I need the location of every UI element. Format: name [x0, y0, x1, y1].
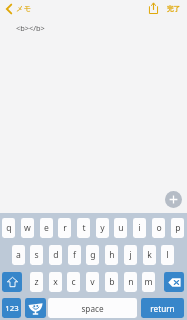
staticText: r [63, 222, 67, 234]
button[interactable]: a [12, 245, 25, 265]
button[interactable]: d [49, 245, 62, 265]
button[interactable]: w [21, 218, 34, 238]
button[interactable]: q [2, 218, 15, 238]
button[interactable]: Share [144, 0, 162, 18]
staticText: m [144, 276, 153, 288]
staticText: g [90, 249, 96, 261]
staticText: k [147, 249, 152, 261]
button[interactable]: v [86, 272, 99, 292]
button[interactable]: c [67, 272, 80, 292]
button[interactable]: return [141, 298, 184, 318]
staticText: f [73, 249, 76, 261]
staticText: s [34, 249, 39, 261]
button[interactable]: r [58, 218, 71, 238]
staticText: a [16, 249, 21, 261]
staticText: e [44, 222, 49, 234]
button[interactable]: Add [165, 191, 182, 208]
button[interactable]: t [77, 218, 90, 238]
button[interactable]: Emoji [25, 298, 46, 318]
button[interactable]: j [124, 245, 137, 265]
button[interactable]: h [105, 245, 118, 265]
button[interactable]: l [161, 245, 174, 265]
staticText: o [156, 222, 162, 234]
button[interactable]: g [86, 245, 99, 265]
staticText: b [109, 276, 115, 288]
staticText: <b></b> [16, 23, 45, 33]
staticText: h [109, 249, 115, 261]
button[interactable]: e [40, 218, 53, 238]
staticText: i [138, 222, 141, 234]
staticText: p [175, 222, 181, 234]
staticText: メモ [16, 4, 31, 13]
button[interactable]: o [152, 218, 165, 238]
button[interactable]: u [114, 218, 127, 238]
staticText: z [34, 276, 39, 288]
staticText: u [118, 222, 124, 234]
button[interactable]: x [49, 272, 62, 292]
button[interactable]: b [105, 272, 118, 292]
button[interactable]: m [142, 272, 155, 292]
staticText: return [150, 303, 175, 314]
button[interactable]: i [133, 218, 146, 238]
staticText: v [90, 276, 95, 288]
button[interactable]: f [68, 245, 81, 265]
staticText: j [129, 249, 132, 261]
button[interactable]: メモ [2, 0, 38, 19]
staticText: 完了 [167, 5, 181, 13]
button[interactable]: 完了 [162, 0, 185, 18]
button[interactable]: k [143, 245, 156, 265]
staticText: q [6, 222, 12, 234]
button[interactable]: z [30, 272, 43, 292]
button[interactable]: y [96, 218, 109, 238]
staticText: 123 [5, 303, 19, 314]
staticText: t [82, 222, 86, 234]
button[interactable]: Backspace [164, 272, 184, 292]
staticText: w [24, 222, 31, 234]
staticText: l [166, 249, 169, 261]
staticText: c [71, 276, 76, 288]
button[interactable]: n [124, 272, 137, 292]
button[interactable]: 123 [2, 298, 21, 318]
staticText: y [100, 222, 105, 234]
staticText: x [53, 276, 58, 288]
staticText: d [53, 249, 59, 261]
button[interactable]: space [48, 298, 137, 318]
staticText: n [128, 276, 134, 288]
staticText: space [81, 303, 104, 314]
button[interactable]: Shift [2, 272, 22, 292]
button[interactable]: p [171, 218, 184, 238]
button[interactable]: s [30, 245, 43, 265]
